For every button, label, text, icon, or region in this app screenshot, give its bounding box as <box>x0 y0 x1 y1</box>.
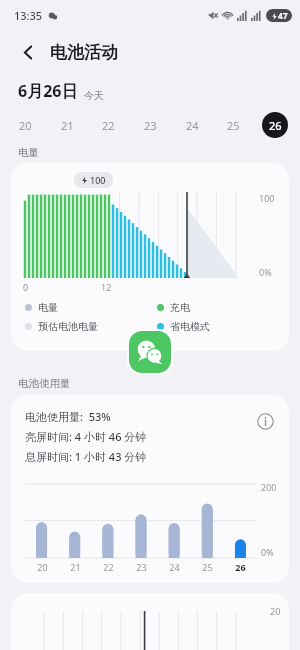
staticText: 47 <box>278 10 288 22</box>
staticText: 26 <box>269 118 282 133</box>
button[interactable]: 22 <box>95 112 121 138</box>
staticText: 电池使用量: 53% <box>25 409 111 424</box>
button[interactable]: 26 <box>262 112 288 138</box>
staticText: 电池使用量 <box>18 377 71 390</box>
staticText: 电量 <box>18 146 39 159</box>
staticText: 23 <box>136 561 147 573</box>
staticText: 13:35 <box>14 8 43 23</box>
button[interactable]: 25 <box>220 112 246 138</box>
staticText: 省电模式 <box>170 320 210 333</box>
button[interactable]: 23 <box>137 112 163 138</box>
button[interactable]: Info <box>253 409 277 433</box>
staticText: 0 <box>23 281 29 293</box>
staticText: 电量 <box>38 301 58 314</box>
button[interactable]: 20 <box>12 112 38 138</box>
staticText: 24 <box>169 561 180 573</box>
staticText: 25 <box>202 561 213 573</box>
staticText: 0% <box>261 546 274 558</box>
button[interactable]: 21 <box>54 112 80 138</box>
staticText: 0% <box>259 266 272 278</box>
staticText: 21 <box>61 118 74 133</box>
staticText: 预估电池电量 <box>38 320 98 333</box>
staticText: 20 <box>37 561 48 573</box>
staticText: 22 <box>103 561 114 573</box>
staticText: 24 <box>186 118 199 133</box>
staticText: 充电 <box>170 301 190 314</box>
staticText: 100 <box>90 174 106 186</box>
staticText: 息屏时间: 1 小时 43 分钟 <box>25 449 147 464</box>
staticText: 20 <box>270 605 281 617</box>
staticText: 亮屏时间: 4 小时 46 分钟 <box>25 429 147 444</box>
staticText: 20 <box>19 118 32 133</box>
staticText: 100 <box>259 192 275 204</box>
button[interactable]: Back <box>14 38 42 66</box>
staticText: 21 <box>70 561 81 573</box>
staticText: 6月26日 <box>18 80 78 102</box>
staticText: 26 <box>235 561 246 573</box>
staticText: 200 <box>261 481 277 493</box>
staticText: 23 <box>144 118 157 133</box>
staticText: 今天 <box>84 89 104 102</box>
staticText: 电池活动 <box>50 42 118 63</box>
staticText: 12 <box>101 281 112 293</box>
button[interactable]: 24 <box>179 112 205 138</box>
staticText: 22 <box>102 118 115 133</box>
staticText: 25 <box>227 118 240 133</box>
button[interactable]: WeChat <box>129 331 171 373</box>
